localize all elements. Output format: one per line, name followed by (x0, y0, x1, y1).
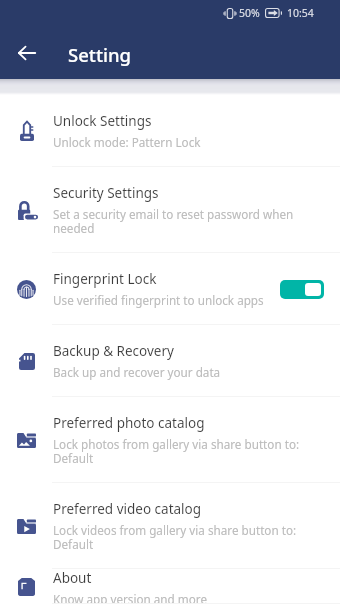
staticText: Preferred video catalog (53, 500, 202, 518)
button[interactable]: Unlock Settings (0, 95, 340, 167)
staticText: About (53, 569, 92, 587)
staticText: Setting (68, 42, 132, 67)
button[interactable]: Backup & Recovery (0, 325, 340, 397)
staticText: 50% (239, 6, 260, 20)
staticText: Unlock Settings (53, 112, 152, 130)
button[interactable]: Fingerprint Lock (0, 253, 340, 325)
staticText: 10:54 (287, 6, 314, 20)
staticText: Back up and recover your data (53, 364, 221, 380)
staticText: Use verified fingerprint to unlock apps (53, 292, 264, 308)
staticText: Backup & Recovery (53, 342, 174, 360)
button[interactable]: Back (9, 35, 44, 70)
button[interactable]: Fingerprint lock toggle (280, 280, 324, 299)
button[interactable]: About (0, 569, 340, 604)
staticText: Lock videos from gallery via share butto… (53, 522, 297, 552)
staticText: Lock photos from gallery via share butto… (53, 436, 300, 466)
staticText: Unlock mode: Pattern Lock (53, 134, 201, 150)
staticText: Set a security email to reset password w… (53, 206, 294, 236)
staticText: Know app version and more (53, 591, 207, 604)
button[interactable]: Preferred photo catalog (0, 397, 340, 483)
button[interactable]: Security Settings (0, 167, 340, 253)
staticText: Preferred photo catalog (53, 414, 205, 432)
staticText: Security Settings (53, 184, 159, 202)
staticText: Fingerprint Lock (53, 270, 157, 288)
button[interactable]: Preferred video catalog (0, 483, 340, 569)
